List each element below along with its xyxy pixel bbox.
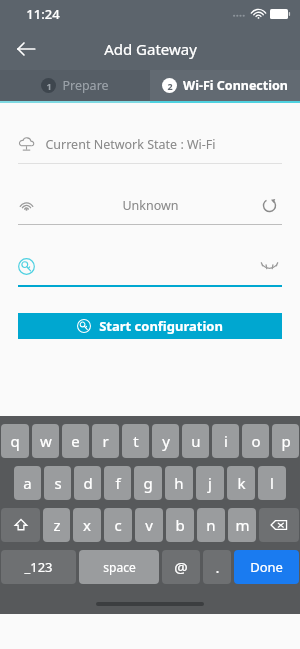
staticText: Unknown — [45, 197, 256, 214]
button[interactable]: Start configuration — [18, 313, 282, 339]
button[interactable]: l — [258, 466, 286, 500]
staticText: e — [71, 431, 80, 451]
button[interactable]: Done — [234, 550, 299, 584]
staticText: x — [83, 515, 91, 535]
staticText: 2 — [167, 80, 173, 92]
staticText: r — [102, 431, 109, 451]
staticText: j — [208, 473, 212, 493]
button[interactable]: r — [92, 424, 119, 458]
button[interactable]: _123 — [1, 550, 76, 584]
button[interactable]: c — [104, 508, 132, 542]
staticText: o — [251, 431, 261, 451]
button[interactable]: Show password — [18, 253, 282, 279]
staticText: y — [162, 431, 170, 451]
button[interactable]: Unknown — [18, 192, 282, 218]
staticText: l — [270, 473, 274, 493]
staticText: q — [10, 431, 20, 451]
button[interactable]: d — [74, 466, 101, 500]
staticText: space — [103, 559, 136, 575]
staticText: _123 — [24, 558, 53, 576]
staticText: p — [281, 431, 291, 451]
staticText: z — [53, 515, 61, 535]
button[interactable]: j — [196, 466, 224, 500]
staticText: f — [115, 473, 121, 493]
staticText: k — [237, 473, 246, 493]
button[interactable]: q — [1, 424, 29, 458]
staticText: Prepare — [62, 77, 109, 94]
button[interactable]: t — [122, 424, 149, 458]
button[interactable]: . — [203, 550, 231, 584]
button[interactable]: o — [242, 424, 269, 458]
staticText: Current Network State : Wi-Fi — [45, 136, 216, 153]
staticText: Start configuration — [99, 317, 223, 335]
button[interactable]: Shift — [1, 508, 40, 542]
staticText: v — [145, 515, 153, 535]
staticText: m — [235, 515, 250, 535]
button[interactable]: a — [14, 466, 41, 500]
staticText: u — [191, 431, 201, 451]
button[interactable]: v — [135, 508, 163, 542]
button[interactable]: m — [228, 508, 256, 542]
staticText: w — [40, 431, 52, 451]
button[interactable]: space — [79, 550, 159, 584]
button[interactable]: h — [165, 466, 193, 500]
button[interactable]: Show password — [256, 253, 282, 279]
button[interactable]: Refresh — [256, 192, 282, 218]
button[interactable]: s — [44, 466, 71, 500]
button[interactable]: u — [182, 424, 209, 458]
staticText: Wi-Fi Connection — [183, 77, 288, 94]
staticText: s — [54, 473, 62, 493]
staticText: c — [114, 515, 122, 535]
button[interactable]: i — [212, 424, 239, 458]
staticText: 1 — [46, 80, 52, 92]
button[interactable]: p — [272, 424, 299, 458]
staticText: b — [175, 515, 185, 535]
button[interactable]: g — [134, 466, 162, 500]
button[interactable]: f — [104, 466, 131, 500]
button[interactable]: 2 — [150, 70, 300, 101]
button[interactable]: x — [73, 508, 101, 542]
staticText: Done — [250, 558, 283, 576]
staticText: a — [23, 473, 32, 493]
staticText: d — [83, 473, 93, 493]
staticText: 11:24 — [26, 5, 60, 23]
staticText: @ — [174, 557, 188, 577]
button[interactable]: z — [43, 508, 70, 542]
staticText: n — [206, 515, 216, 535]
button[interactable]: w — [32, 424, 59, 458]
button[interactable]: 1 — [0, 70, 150, 101]
button[interactable]: b — [166, 508, 194, 542]
staticText: i — [224, 431, 228, 451]
button[interactable]: Current Network State : Wi-Fi — [18, 131, 282, 157]
staticText: . — [215, 557, 220, 577]
button[interactable]: e — [62, 424, 89, 458]
button[interactable]: Backspace — [259, 508, 299, 542]
staticText: Add Gateway — [104, 39, 197, 59]
button[interactable]: n — [197, 508, 225, 542]
button[interactable]: y — [152, 424, 179, 458]
button[interactable]: @ — [162, 550, 200, 584]
staticText: h — [174, 473, 184, 493]
button[interactable]: Back — [8, 31, 44, 67]
staticText: t — [133, 431, 139, 451]
button[interactable]: k — [227, 466, 255, 500]
staticText: g — [143, 473, 153, 493]
